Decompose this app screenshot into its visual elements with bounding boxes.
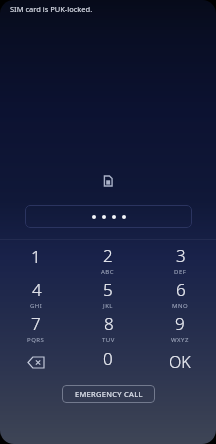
button[interactable]: 3 — [144, 243, 216, 277]
staticText: OK — [169, 351, 191, 373]
button[interactable]: OK — [144, 345, 216, 379]
staticText: WXYZ — [171, 336, 189, 344]
staticText: 4 — [32, 278, 42, 301]
button[interactable]: Backspace — [0, 345, 72, 379]
staticText: 8 — [104, 312, 114, 335]
button[interactable]: 9 — [144, 311, 216, 345]
button[interactable]: 7 — [0, 311, 72, 345]
button[interactable]: 0 — [72, 345, 144, 379]
button[interactable]: EMERGENCY CALL — [62, 385, 155, 403]
staticText: EMERGENCY CALL — [75, 389, 143, 399]
staticText: ABC — [101, 268, 115, 276]
staticText: 7 — [31, 312, 41, 335]
button[interactable]: 2 — [72, 243, 144, 277]
button[interactable]: 6 — [144, 277, 216, 311]
button[interactable]: 8 — [72, 311, 144, 345]
button[interactable]: 4 — [0, 277, 72, 311]
staticText: MNO — [172, 302, 189, 310]
button[interactable]: 5 — [72, 277, 144, 311]
button[interactable] — [25, 205, 192, 228]
staticText: GHI — [30, 302, 43, 310]
button[interactable]: 1 — [0, 243, 72, 277]
staticText: 0 — [103, 347, 113, 370]
staticText: 9 — [175, 312, 185, 335]
staticText: 5 — [103, 278, 113, 301]
staticText: 6 — [176, 278, 186, 301]
staticText: 1 — [31, 245, 41, 268]
staticText: SIM card is PUK-locked. — [10, 4, 93, 14]
staticText: JKL — [103, 302, 113, 310]
staticText: 2 — [103, 244, 113, 267]
staticText: DEF — [174, 268, 187, 276]
staticText: TUV — [102, 336, 115, 344]
staticText: PQRS — [27, 336, 45, 344]
staticText: 3 — [176, 244, 186, 267]
